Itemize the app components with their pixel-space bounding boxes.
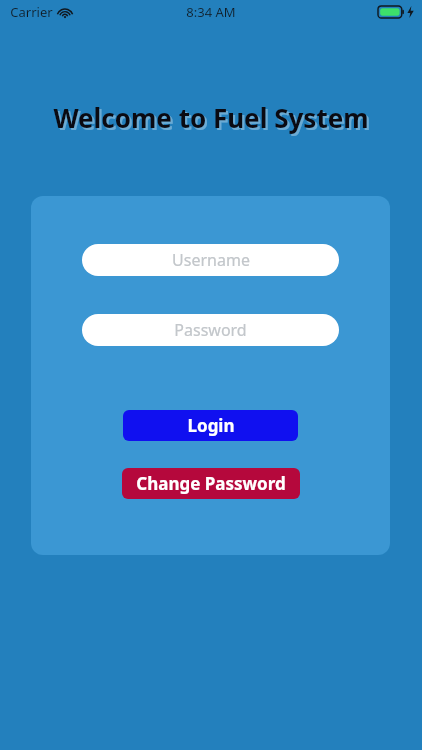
staticText: Welcome to Fuel System	[2, 102, 422, 137]
button[interactable]: Password	[82, 314, 339, 346]
staticText: Carrier	[10, 3, 53, 21]
staticText: Welcome to Fuel System	[0, 100, 422, 135]
staticText: 8:34 AM	[186, 3, 236, 21]
other: Wi-Fi	[58, 7, 72, 18]
staticText: Password	[174, 319, 247, 341]
button[interactable]: Change Password	[122, 468, 300, 499]
button[interactable]: Username	[82, 244, 339, 276]
staticText: Login	[187, 414, 235, 437]
staticText: Change Password	[136, 472, 286, 495]
button[interactable]: Login	[123, 410, 298, 441]
staticText: Username	[172, 249, 250, 271]
